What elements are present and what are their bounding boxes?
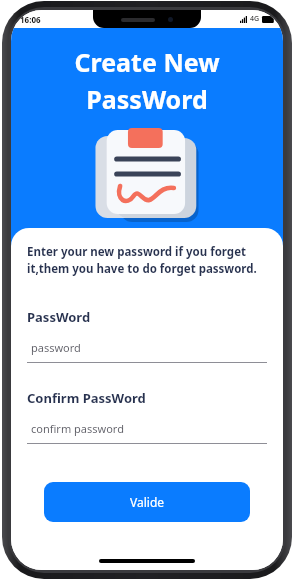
button[interactable]: Valide	[44, 482, 250, 522]
staticText: Enter your new password if you forget it…	[27, 244, 267, 276]
staticText: 4G	[250, 14, 260, 24]
staticText: confirm password	[31, 421, 124, 436]
staticText: password	[31, 340, 81, 355]
staticText: PassWord	[86, 82, 208, 116]
staticText: PassWord	[27, 308, 91, 326]
staticText: Confirm PassWord	[27, 389, 146, 407]
staticText: Valide	[130, 494, 165, 510]
button[interactable]: confirm password	[27, 421, 267, 444]
staticText: Create New	[74, 45, 220, 79]
staticText: 16:06	[20, 14, 41, 25]
button[interactable]: password	[27, 340, 267, 363]
